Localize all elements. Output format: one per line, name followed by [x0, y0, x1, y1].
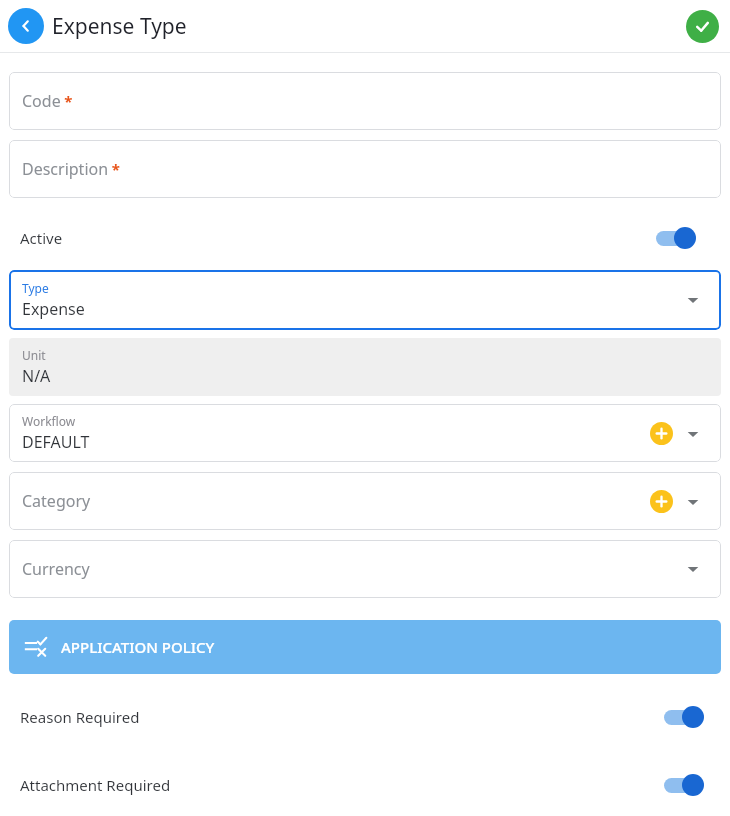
button[interactable]: Back: [8, 8, 44, 44]
staticText: Currency: [22, 558, 90, 580]
button[interactable]: Type: [9, 270, 721, 330]
staticText: Category: [22, 490, 91, 512]
button[interactable]: Open dropdown: [683, 492, 703, 512]
button[interactable]: Currency: [9, 540, 721, 598]
button[interactable]: Attachment Required: [0, 758, 730, 812]
staticText: Workflow: [22, 413, 76, 429]
button[interactable]: Open dropdown: [683, 290, 703, 310]
button[interactable]: Open dropdown: [683, 424, 703, 444]
button[interactable]: Toggle on: [662, 704, 708, 730]
button[interactable]: Add: [650, 490, 673, 513]
button[interactable]: Open dropdown: [683, 559, 703, 579]
staticText: Code *: [22, 90, 73, 112]
button[interactable]: Save: [686, 10, 719, 43]
staticText: Unit: [22, 347, 46, 363]
staticText: Type: [22, 280, 49, 296]
button[interactable]: Code *: [9, 72, 721, 130]
button[interactable]: Add: [650, 422, 673, 445]
staticText: Reason Required: [20, 707, 140, 727]
button[interactable]: Toggle on: [654, 225, 700, 251]
staticText: Expense Type: [52, 12, 187, 41]
button[interactable]: Toggle on: [662, 772, 708, 798]
button[interactable]: Unit: [9, 338, 721, 396]
button[interactable]: Active: [0, 210, 730, 266]
button[interactable]: Description *: [9, 140, 721, 198]
button[interactable]: APPLICATION POLICY: [9, 620, 721, 674]
staticText: Expense: [22, 298, 85, 320]
button[interactable]: Category: [9, 472, 721, 530]
staticText: APPLICATION POLICY: [61, 637, 215, 657]
staticText: Attachment Required: [20, 775, 171, 795]
staticText: Description *: [22, 158, 120, 180]
button[interactable]: Reason Required: [0, 690, 730, 744]
staticText: N/A: [22, 365, 51, 387]
staticText: DEFAULT: [22, 431, 90, 453]
button[interactable]: Workflow: [9, 404, 721, 462]
staticText: Active: [20, 228, 63, 248]
